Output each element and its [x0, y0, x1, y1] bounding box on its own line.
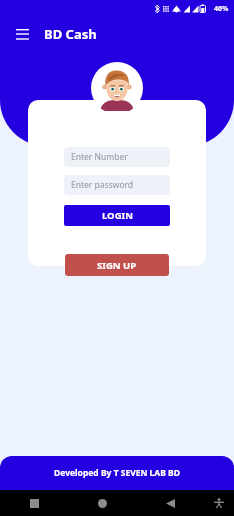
button[interactable]: Enter password [64, 175, 170, 195]
button[interactable]: Enter Number [64, 147, 170, 167]
button[interactable]: Back [136, 490, 204, 516]
button[interactable]: Developed By T SEVEN LAB BD [0, 456, 234, 490]
button[interactable]: SIGN UP [65, 254, 169, 276]
button[interactable]: Home [68, 490, 136, 516]
staticText: Developed By T SEVEN LAB BD [54, 467, 180, 479]
button[interactable]: Recent apps [0, 490, 68, 516]
staticText: BD Cash [44, 25, 97, 43]
staticText: Enter Number [71, 151, 128, 163]
staticText: LOGIN [102, 209, 133, 222]
button[interactable]: Accessibility menu [204, 490, 234, 516]
button[interactable]: Open navigation menu [8, 20, 36, 48]
button[interactable]: LOGIN [64, 205, 170, 226]
staticText: Enter password [71, 179, 134, 191]
staticText: 46% [214, 4, 229, 14]
staticText: SIGN UP [97, 259, 137, 272]
